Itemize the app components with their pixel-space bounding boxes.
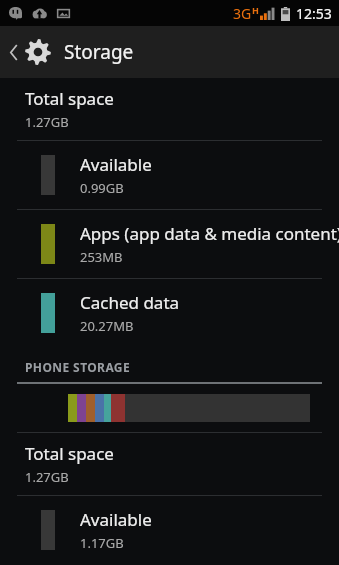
staticText: PHONE STORAGE [25, 359, 131, 375]
staticText: H [252, 4, 259, 16]
button[interactable]: Available [0, 496, 339, 564]
staticText: Available [80, 508, 152, 531]
button[interactable]: Cached data [0, 279, 339, 347]
button[interactable]: Available [0, 141, 339, 209]
staticText: Available [80, 153, 152, 176]
button[interactable]: Total space [0, 78, 339, 140]
staticText: Apps (app data & media content) [80, 222, 339, 245]
other: Back [6, 32, 22, 72]
staticText: 12:53 [296, 4, 332, 23]
staticText: 0.99GB [80, 179, 124, 197]
staticText: Storage [64, 39, 134, 65]
staticText: Total space [25, 442, 114, 465]
staticText: Cached data [80, 291, 180, 314]
staticText: Total space [25, 87, 114, 110]
staticText: 1.27GB [25, 468, 69, 486]
staticText: 20.27MB [80, 317, 134, 335]
staticText: 253MB [80, 248, 123, 266]
staticText: 1.27GB [25, 113, 69, 131]
staticText: 3G [233, 4, 252, 23]
staticText: 1.17GB [80, 534, 124, 552]
button[interactable]: Total space [0, 433, 339, 495]
button[interactable]: Back [0, 26, 339, 78]
button[interactable]: Apps (app data & media content) [0, 210, 339, 278]
